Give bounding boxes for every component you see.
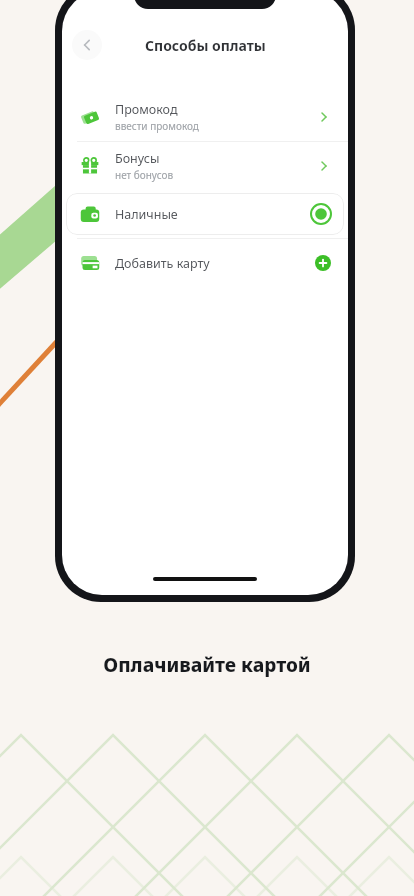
staticText: Наличные [115,206,178,223]
button[interactable]: Промокод [62,93,348,141]
staticText: Добавить карту [115,255,210,272]
staticText: Способы оплаты [145,36,266,55]
staticText: нет бонусов [115,168,174,182]
staticText: Промокод [115,101,178,118]
staticText: Оплачивайте картой [0,652,414,678]
button[interactable]: Назад [72,30,102,60]
staticText: Бонусы [115,150,160,167]
button[interactable]: Добавить карту [62,239,348,287]
button[interactable]: Бонусы [62,142,348,190]
button[interactable]: Наличные [66,193,344,235]
staticText: ввести промокод [115,119,199,133]
